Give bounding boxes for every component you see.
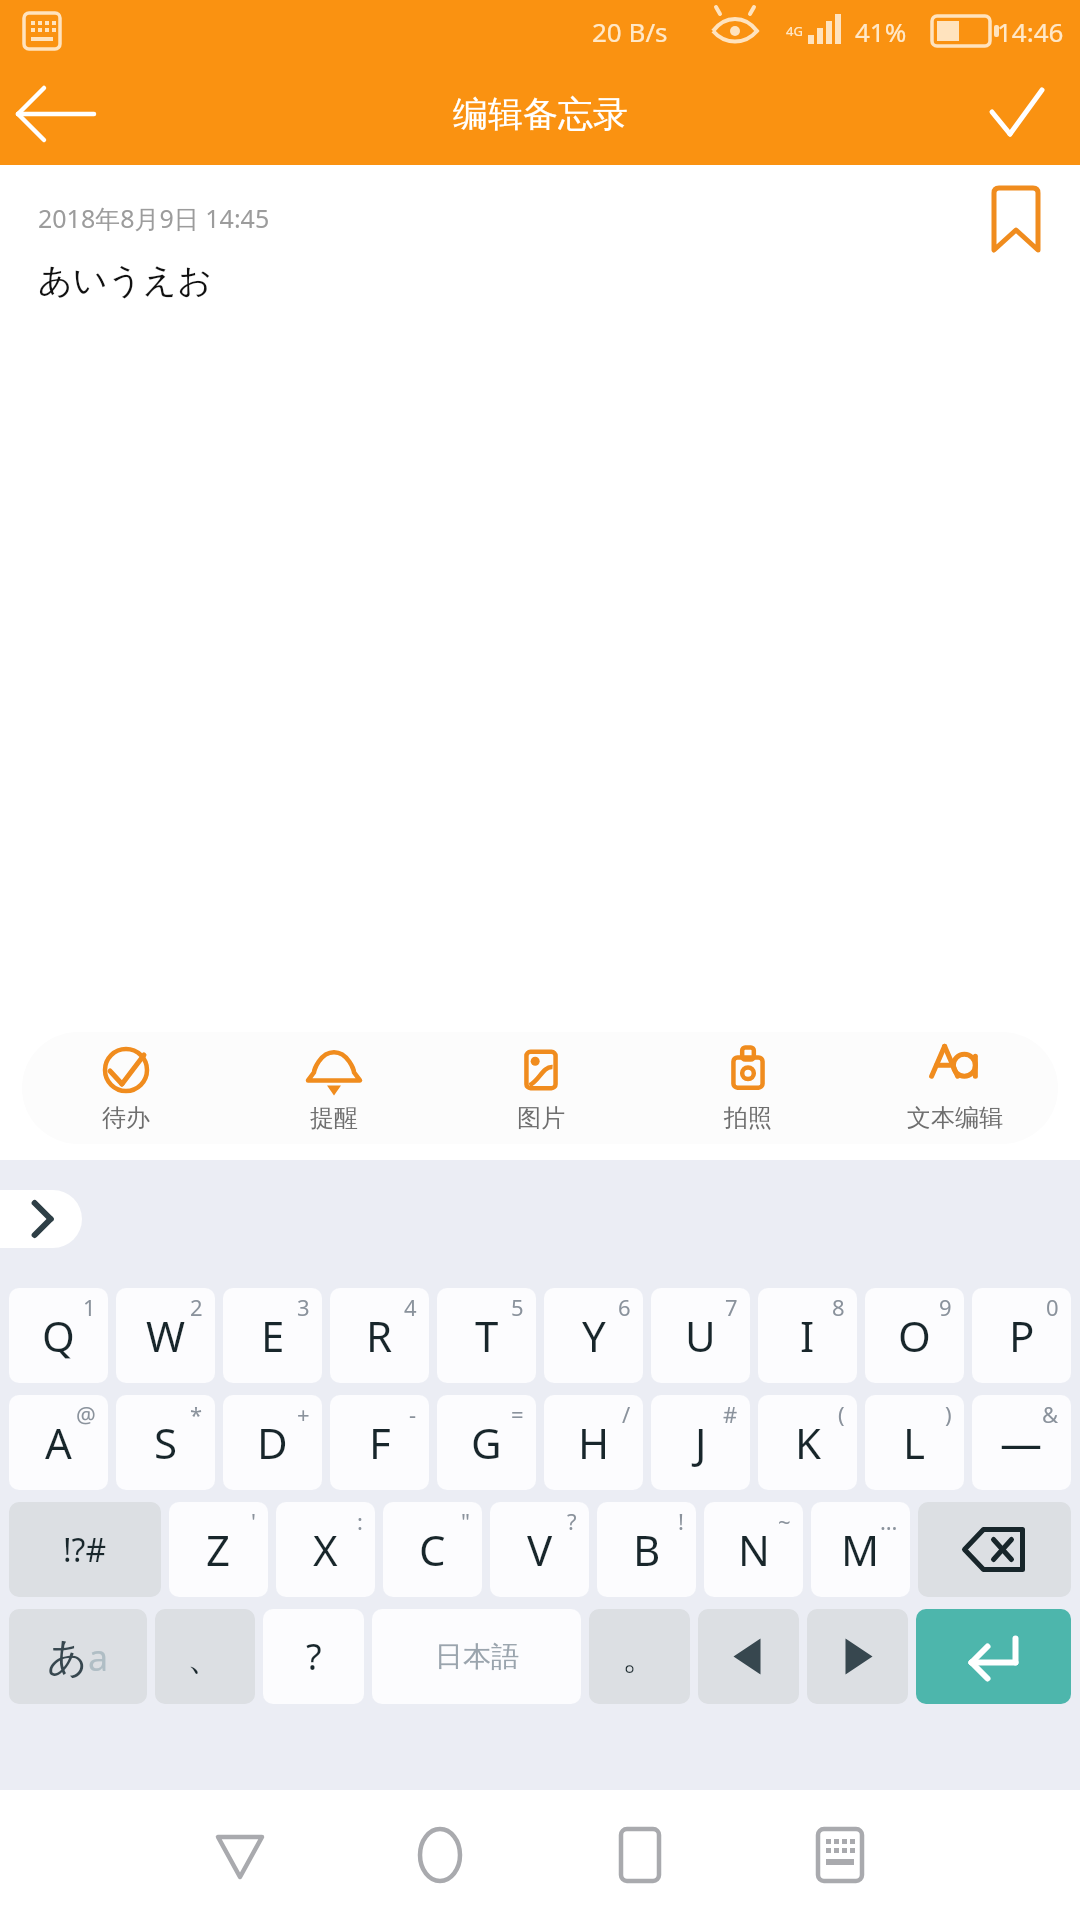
staticText: 拍照: [724, 1103, 772, 1133]
button[interactable]: あ: [9, 1609, 147, 1704]
button[interactable]: E: [223, 1288, 322, 1383]
staticText: 14:46: [997, 14, 1064, 49]
button[interactable]: 文本编辑: [851, 1032, 1058, 1144]
button[interactable]: Bookmark: [984, 187, 1048, 251]
button[interactable]: O: [865, 1288, 964, 1383]
button[interactable]: 日本語: [372, 1609, 581, 1704]
button[interactable]: Z: [169, 1502, 268, 1597]
staticText: U: [685, 1307, 716, 1364]
staticText: 日本語: [435, 1639, 519, 1674]
staticText: G: [471, 1414, 502, 1471]
button[interactable]: 待办: [22, 1032, 230, 1144]
button[interactable]: L: [865, 1395, 964, 1490]
button[interactable]: 提醒: [230, 1032, 437, 1144]
button[interactable]: A: [9, 1395, 108, 1490]
button[interactable]: !?#: [9, 1502, 161, 1597]
staticText: ?: [567, 1506, 577, 1536]
button[interactable]: 。: [589, 1609, 690, 1704]
staticText: ~: [778, 1506, 791, 1536]
staticText: !?#: [63, 1528, 107, 1572]
staticText: 。: [622, 1634, 658, 1679]
button[interactable]: R: [330, 1288, 429, 1383]
button[interactable]: Recents: [600, 1815, 680, 1895]
button[interactable]: G: [437, 1395, 536, 1490]
button[interactable]: K: [758, 1395, 857, 1490]
staticText: M: [841, 1521, 880, 1578]
staticText: F: [369, 1414, 391, 1471]
staticText: 2: [190, 1292, 203, 1322]
staticText: 0: [1046, 1292, 1059, 1322]
button[interactable]: Keyboard: [800, 1815, 880, 1895]
button[interactable]: F: [330, 1395, 429, 1490]
staticText: ?: [306, 1632, 322, 1681]
staticText: K: [795, 1414, 821, 1471]
button[interactable]: Home: [400, 1815, 480, 1895]
staticText: 20 B/s: [592, 14, 668, 49]
staticText: 41%: [855, 14, 907, 49]
button[interactable]: Move right: [807, 1609, 908, 1704]
staticText: L: [903, 1414, 926, 1471]
staticText: ": [461, 1506, 470, 1536]
button[interactable]: —: [972, 1395, 1071, 1490]
staticText: 、: [187, 1634, 223, 1679]
button[interactable]: D: [223, 1395, 322, 1490]
staticText: #: [723, 1399, 738, 1429]
button[interactable]: Back: [200, 1815, 280, 1895]
staticText: 5: [511, 1292, 524, 1322]
staticText: +: [297, 1399, 310, 1429]
staticText: Z: [206, 1521, 231, 1578]
button[interactable]: X: [276, 1502, 375, 1597]
staticText: —: [1000, 1414, 1043, 1471]
staticText: 提醒: [310, 1103, 358, 1133]
staticText: T: [475, 1307, 499, 1364]
staticText: 6: [618, 1292, 631, 1322]
button[interactable]: Backspace: [918, 1502, 1071, 1597]
button[interactable]: S: [116, 1395, 215, 1490]
button[interactable]: Save: [980, 78, 1052, 150]
button[interactable]: Expand toolbar: [0, 1190, 82, 1248]
staticText: (: [838, 1399, 845, 1429]
staticText: 1: [83, 1292, 96, 1322]
button[interactable]: Enter: [916, 1609, 1071, 1704]
button[interactable]: ?: [263, 1609, 364, 1704]
staticText: あ: [47, 1632, 88, 1682]
staticText: ': [251, 1506, 256, 1536]
staticText: S: [154, 1414, 178, 1471]
staticText: -: [409, 1399, 417, 1429]
button[interactable]: V: [490, 1502, 589, 1597]
button[interactable]: J: [651, 1395, 750, 1490]
button[interactable]: 、: [155, 1609, 255, 1704]
staticText: &: [1042, 1399, 1059, 1429]
button[interactable]: P: [972, 1288, 1071, 1383]
button[interactable]: Q: [9, 1288, 108, 1383]
staticText: X: [313, 1521, 338, 1578]
staticText: N: [738, 1521, 770, 1578]
staticText: 9: [939, 1292, 952, 1322]
button[interactable]: U: [651, 1288, 750, 1383]
button[interactable]: C: [383, 1502, 482, 1597]
button[interactable]: T: [437, 1288, 536, 1383]
button[interactable]: M: [811, 1502, 910, 1597]
button[interactable]: B: [597, 1502, 696, 1597]
button[interactable]: Y: [544, 1288, 643, 1383]
button[interactable]: Back: [20, 78, 92, 150]
button[interactable]: W: [116, 1288, 215, 1383]
staticText: 4: [404, 1292, 417, 1322]
staticText: 4G: [786, 22, 803, 40]
staticText: I: [800, 1307, 815, 1364]
staticText: あいうえお: [38, 259, 212, 302]
button[interactable]: I: [758, 1288, 857, 1383]
staticText: a: [88, 1633, 109, 1682]
button[interactable]: 拍照: [644, 1032, 851, 1144]
staticText: C: [419, 1521, 446, 1578]
staticText: =: [511, 1399, 524, 1429]
staticText: 8: [832, 1292, 845, 1322]
staticText: Y: [582, 1307, 606, 1364]
staticText: /: [622, 1399, 631, 1429]
button[interactable]: H: [544, 1395, 643, 1490]
button[interactable]: N: [704, 1502, 803, 1597]
button[interactable]: Move left: [698, 1609, 799, 1704]
staticText: V: [527, 1521, 553, 1578]
button[interactable]: 图片: [437, 1032, 644, 1144]
staticText: 待办: [102, 1103, 150, 1133]
